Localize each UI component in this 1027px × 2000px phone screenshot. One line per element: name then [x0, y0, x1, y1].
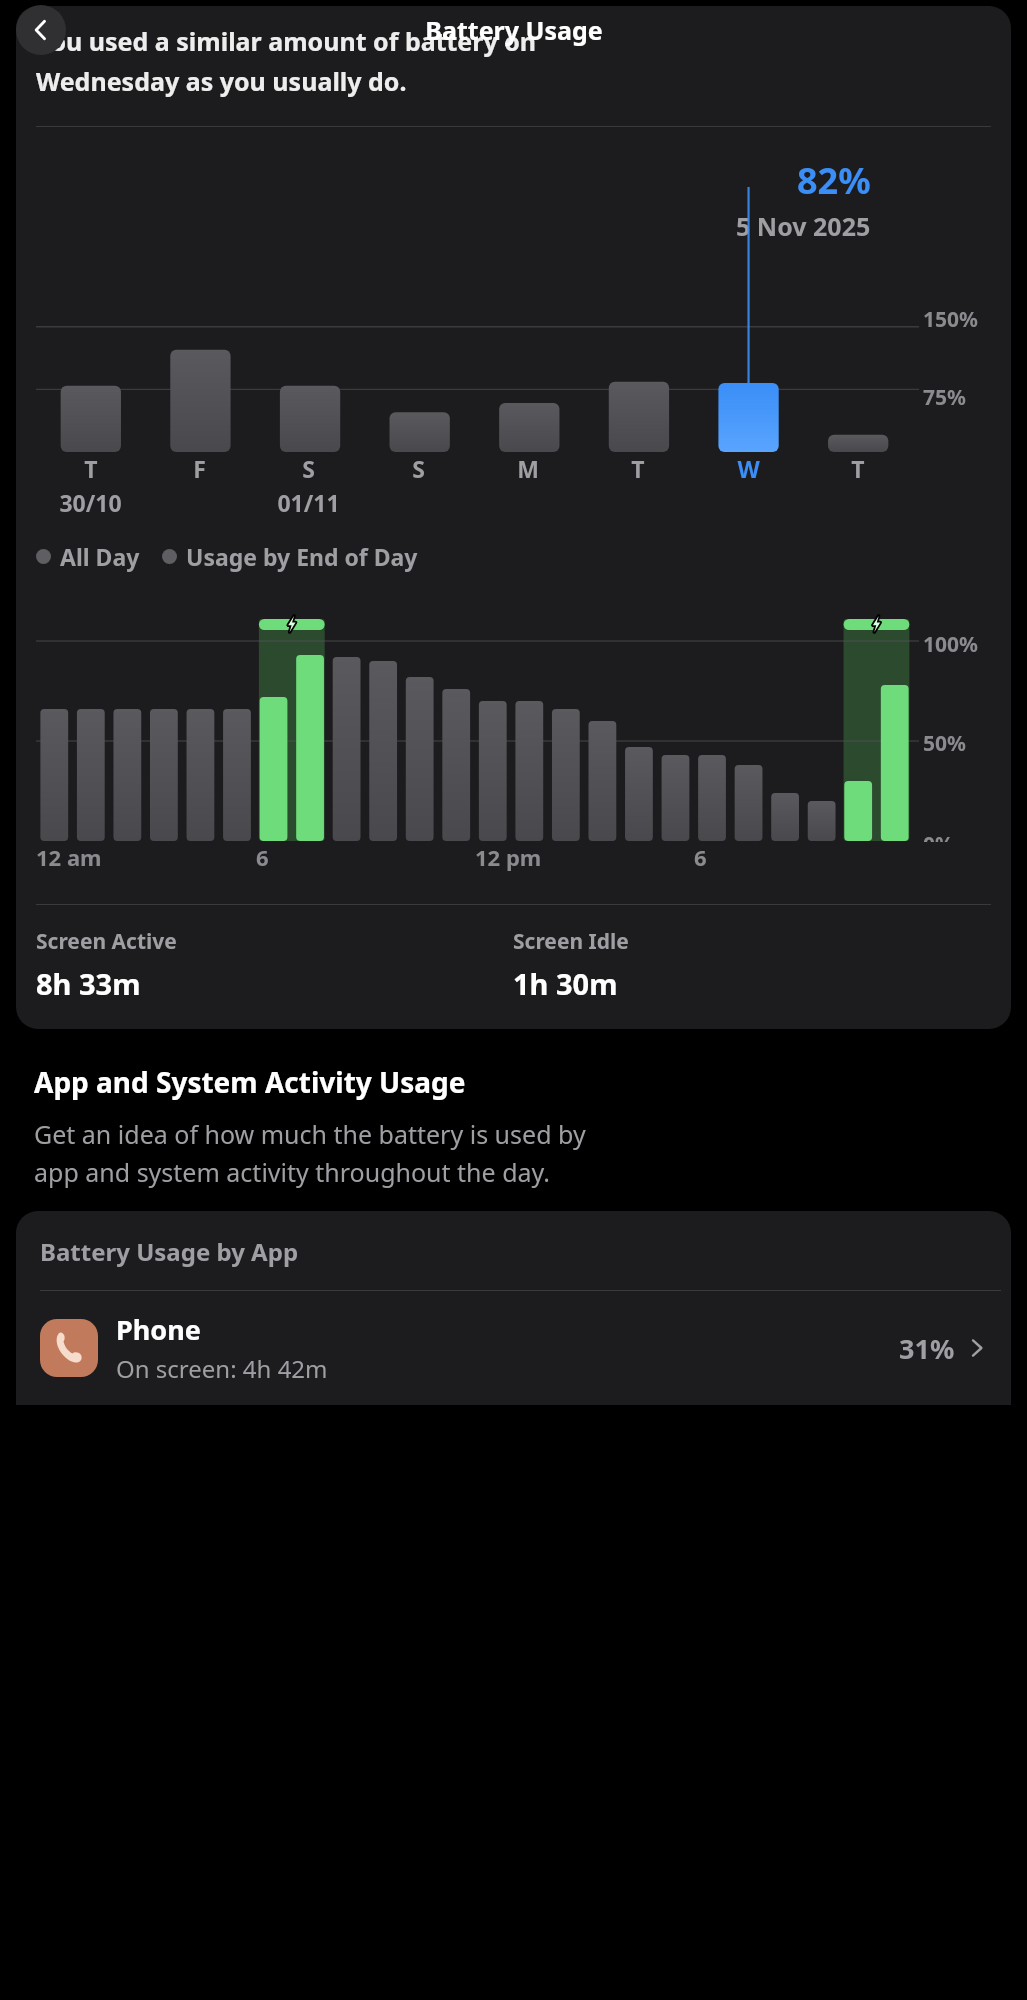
- staticText: 8h 33m: [36, 964, 141, 1003]
- staticText: Battery Usage by App: [40, 1235, 299, 1268]
- button[interactable]: Back: [16, 5, 66, 55]
- staticText: All Day: [60, 541, 140, 572]
- staticText: 0%: [923, 830, 954, 842]
- staticText: 30/10: [59, 487, 122, 518]
- staticText: Screen Active: [36, 927, 177, 956]
- staticText: 1h 30m: [513, 964, 618, 1003]
- staticText: 150%: [923, 305, 978, 334]
- staticText: T: [631, 453, 645, 484]
- staticText: Battery Usage: [425, 13, 603, 47]
- staticText: 75%: [923, 383, 966, 412]
- staticText: 01/11: [277, 487, 340, 518]
- staticText: Screen Idle: [513, 927, 629, 956]
- staticText: 6: [694, 842, 707, 872]
- staticText: Get an idea of how much the battery is u…: [34, 1117, 586, 1151]
- staticText: 100%: [923, 630, 978, 659]
- staticText: 5 Nov 2025: [736, 209, 871, 243]
- staticText: S: [302, 453, 315, 484]
- button[interactable]: Usage by End of Day: [162, 541, 418, 572]
- staticText: app and system activity throughout the d…: [34, 1155, 550, 1189]
- staticText: F: [193, 453, 206, 484]
- staticText: Phone: [116, 1311, 201, 1348]
- staticText: 50%: [923, 729, 966, 758]
- staticText: Usage by End of Day: [186, 541, 418, 572]
- staticText: 12 am: [36, 842, 102, 872]
- staticText: 6: [256, 842, 269, 872]
- staticText: T: [84, 453, 98, 484]
- staticText: On screen: 4h 42m: [116, 1352, 328, 1385]
- button[interactable]: Phone: [16, 1291, 1011, 1405]
- staticText: Wednesday as you usually do.: [36, 64, 407, 98]
- staticText: You used a similar amount of battery on: [36, 24, 537, 58]
- button[interactable]: All Day: [36, 541, 140, 572]
- staticText: App and System Activity Usage: [34, 1063, 466, 1101]
- staticText: 82%: [797, 156, 871, 205]
- staticText: M: [517, 453, 539, 484]
- staticText: S: [412, 453, 425, 484]
- staticText: 12 pm: [475, 842, 542, 872]
- staticText: T: [851, 453, 865, 484]
- staticText: 31%: [899, 1330, 955, 1367]
- staticText: W: [737, 453, 760, 484]
